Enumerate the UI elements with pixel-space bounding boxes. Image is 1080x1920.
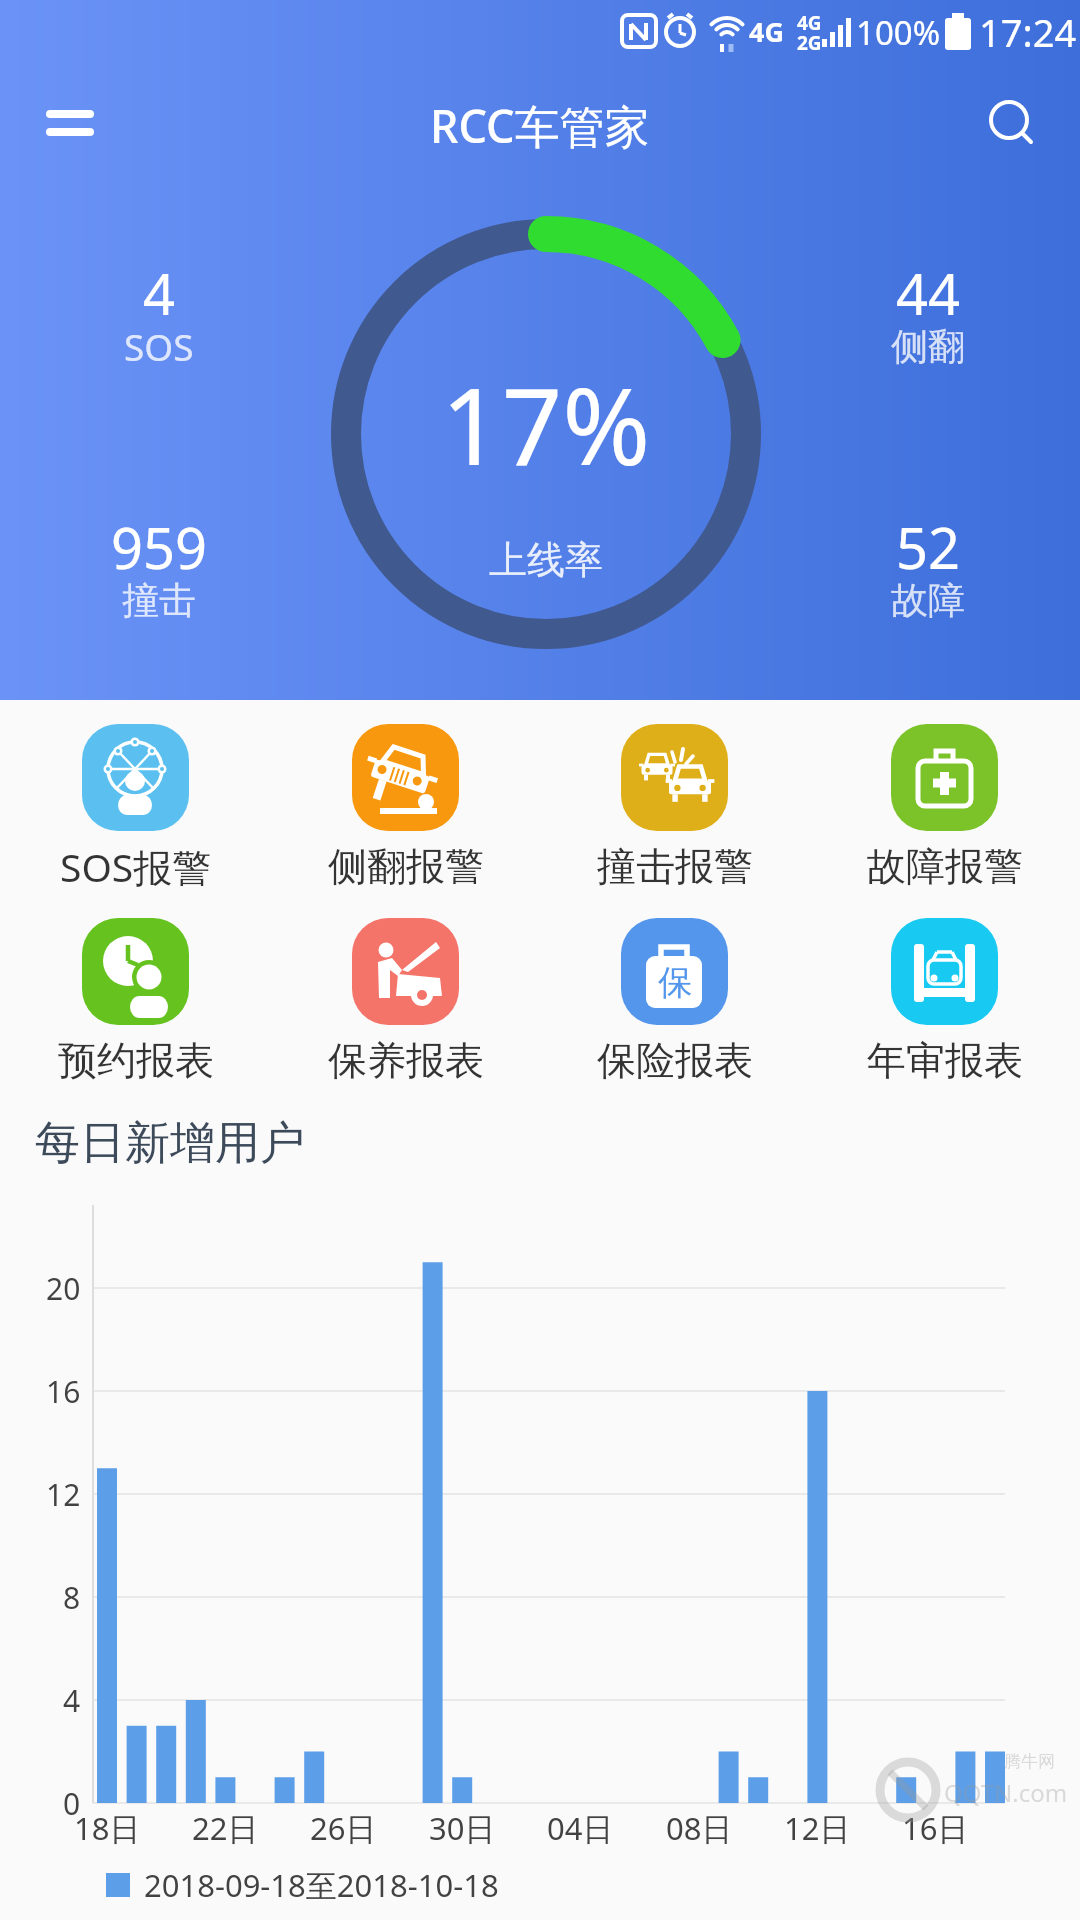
staticText: 18日: [74, 1807, 141, 1849]
staticText: SOS: [124, 321, 194, 371]
staticText: 上线率: [489, 536, 603, 584]
staticText: 8: [63, 1577, 81, 1618]
staticText: 52: [896, 509, 961, 575]
button[interactable]: [974, 84, 1048, 158]
staticText: 撞击: [122, 577, 196, 624]
staticText: 4G: [749, 13, 784, 49]
staticText: 4G: [797, 10, 822, 32]
staticText: QQTN.com: [944, 1776, 1068, 1809]
staticText: 16: [46, 1371, 81, 1412]
staticText: 4: [63, 1680, 81, 1721]
staticText: 0: [63, 1783, 81, 1824]
staticText: 12日: [784, 1807, 851, 1849]
button[interactable]: [352, 724, 459, 831]
staticText: 30日: [429, 1807, 496, 1849]
button[interactable]: [891, 724, 998, 831]
staticText: 侧翻报警: [328, 842, 484, 891]
staticText: 保险报表: [597, 1036, 753, 1085]
button[interactable]: 保: [621, 918, 728, 1025]
button[interactable]: [82, 724, 189, 831]
staticText: 04日: [547, 1807, 614, 1849]
staticText: 12: [46, 1474, 81, 1515]
staticText: 959: [111, 509, 208, 575]
staticText: 17:24: [979, 6, 1077, 58]
staticText: 预约报表: [58, 1036, 214, 1085]
button[interactable]: [621, 724, 728, 831]
staticText: 2G: [797, 30, 822, 52]
staticText: 44: [896, 255, 961, 321]
staticText: 每日新增用户: [35, 1115, 305, 1169]
staticText: 08日: [666, 1807, 733, 1849]
staticText: 2018-09-18至2018-10-18: [144, 1864, 499, 1906]
staticText: RCC车管家: [430, 95, 650, 155]
staticText: 撞击报警: [597, 842, 753, 891]
staticText: 故障报警: [867, 842, 1023, 891]
button[interactable]: [352, 918, 459, 1025]
staticText: 26日: [310, 1807, 377, 1849]
staticText: 20: [46, 1268, 81, 1309]
staticText: 4: [143, 255, 176, 321]
staticText: 保: [658, 961, 692, 1004]
staticText: 故障: [891, 577, 965, 624]
staticText: 16日: [902, 1807, 969, 1849]
staticText: 22日: [192, 1807, 259, 1849]
button[interactable]: [82, 918, 189, 1025]
staticText: 腾牛网: [1004, 1751, 1055, 1772]
staticText: 年审报表: [867, 1036, 1023, 1085]
staticText: 100%: [856, 10, 941, 55]
staticText: 保养报表: [328, 1036, 484, 1085]
button[interactable]: [28, 86, 112, 158]
staticText: 17%: [441, 352, 651, 492]
staticText: 侧翻: [891, 323, 965, 370]
button[interactable]: [891, 918, 998, 1025]
staticText: SOS报警: [60, 840, 212, 893]
